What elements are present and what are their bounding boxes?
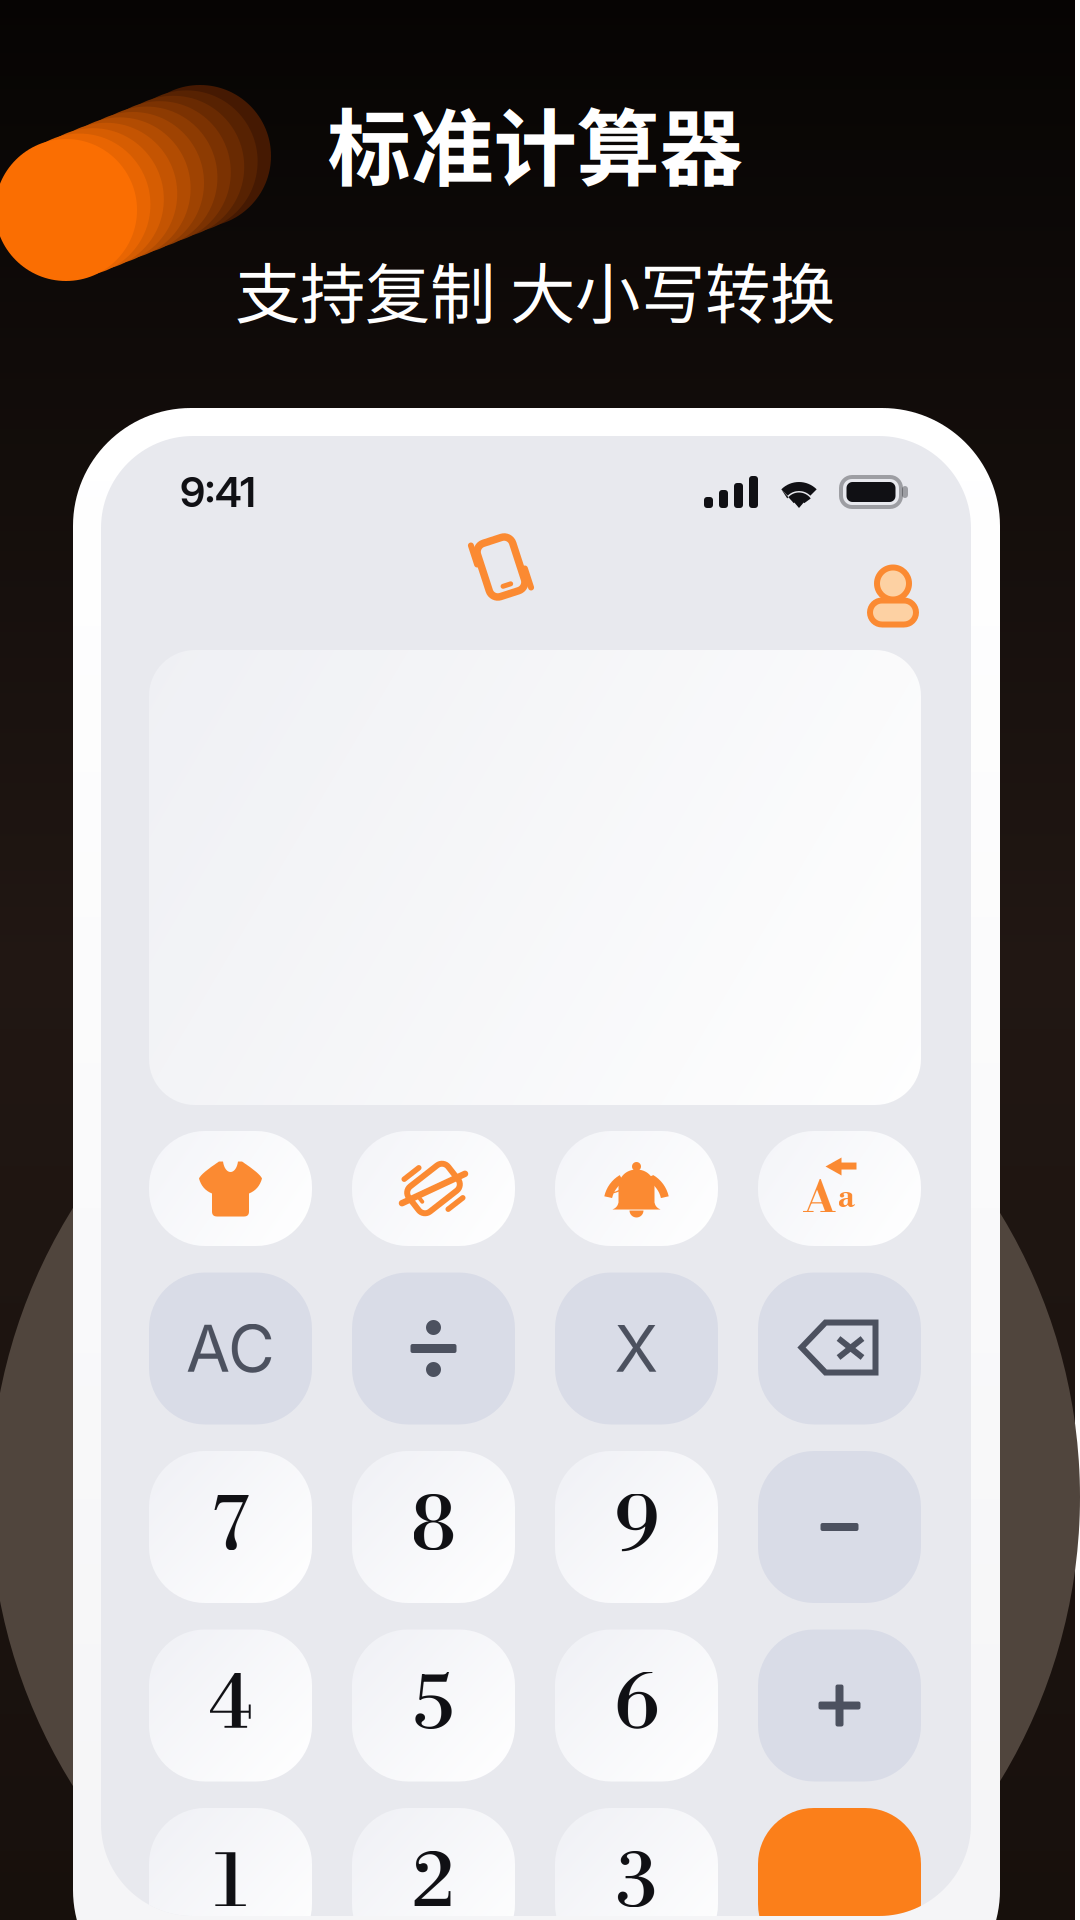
staticText: 8 — [410, 1480, 456, 1574]
button[interactable]: 8 — [352, 1451, 515, 1603]
staticText: AC — [186, 1310, 275, 1387]
button[interactable]: Divide — [352, 1272, 515, 1424]
button[interactable]: Vibration off — [352, 1131, 515, 1246]
staticText: a — [837, 1177, 854, 1217]
button[interactable]: 6 — [555, 1629, 718, 1781]
staticText: 9:41 — [180, 467, 256, 517]
button[interactable]: 2 — [352, 1808, 515, 1920]
staticText: 7 — [211, 1480, 249, 1574]
button[interactable]: Equals — [758, 1808, 921, 1920]
button[interactable]: 5 — [352, 1629, 515, 1781]
button[interactable]: 9 — [555, 1451, 718, 1603]
staticText: X — [614, 1310, 658, 1387]
staticText: 3 — [616, 1837, 657, 1920]
button[interactable]: Theme — [149, 1131, 312, 1246]
button[interactable]: Case conversion — [758, 1131, 921, 1246]
button[interactable]: 7 — [149, 1451, 312, 1603]
staticText: 4 — [208, 1659, 252, 1752]
button[interactable]: 3 — [555, 1808, 718, 1920]
button[interactable]: Plus — [758, 1629, 921, 1781]
staticText: 1 — [214, 1837, 246, 1920]
staticText: 支持复制 大小写转换 — [235, 242, 835, 337]
button[interactable]: Minus — [758, 1451, 921, 1603]
staticText: 标准计算器 — [327, 82, 742, 203]
button[interactable]: Vibration — [446, 512, 556, 622]
staticText: 5 — [413, 1659, 454, 1752]
staticText: A — [803, 1171, 834, 1226]
button[interactable]: Sound — [555, 1131, 718, 1246]
button[interactable]: Delete — [758, 1272, 921, 1424]
button[interactable]: Multiply — [555, 1272, 718, 1424]
button[interactable]: 1 — [149, 1808, 312, 1920]
staticText: 2 — [412, 1837, 455, 1920]
staticText: 9 — [614, 1480, 659, 1574]
button[interactable]: Account — [843, 546, 943, 646]
button[interactable]: AC — [149, 1272, 312, 1424]
staticText: 6 — [614, 1659, 659, 1752]
button[interactable]: 4 — [149, 1629, 312, 1781]
